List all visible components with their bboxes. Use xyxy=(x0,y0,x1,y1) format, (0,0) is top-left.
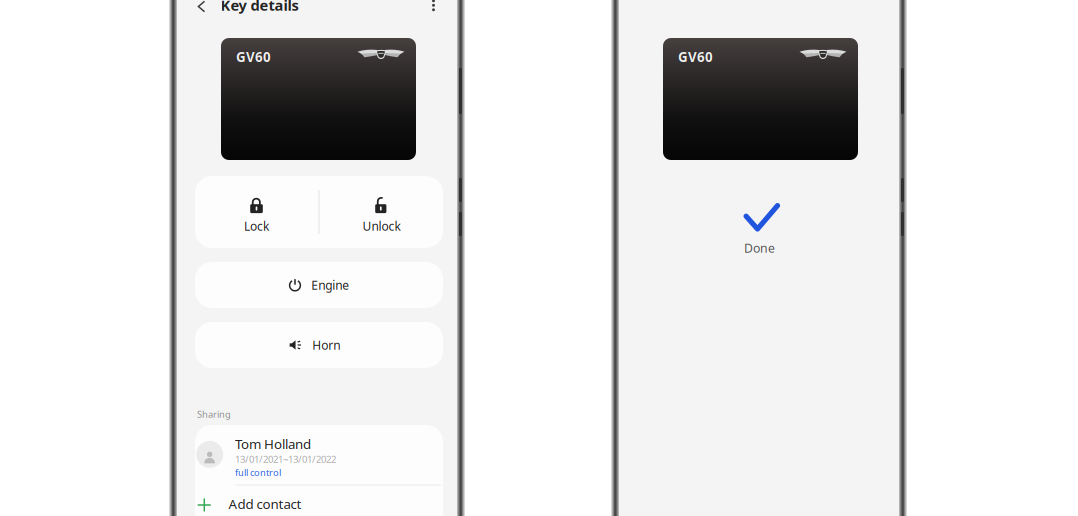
button[interactable]: More options xyxy=(421,0,445,17)
staticText: Add contact xyxy=(229,495,302,513)
staticText: Unlock xyxy=(362,218,400,234)
staticText: Horn xyxy=(312,337,340,353)
staticText: Done xyxy=(744,240,775,256)
button[interactable]: Unlock xyxy=(320,176,443,248)
staticText: Engine xyxy=(311,277,349,293)
staticText: GV60 xyxy=(236,48,271,66)
staticText: Tom Holland xyxy=(235,435,311,453)
button[interactable]: Add contact xyxy=(195,485,443,516)
button[interactable]: Engine xyxy=(195,262,443,308)
button[interactable]: Back xyxy=(187,0,215,19)
staticText: 13/01/2021~13/01/2022 xyxy=(235,452,336,465)
staticText: full control xyxy=(235,466,281,479)
button[interactable]: Lock xyxy=(195,176,318,248)
staticText: Sharing xyxy=(197,408,231,420)
button[interactable]: Key details xyxy=(220,0,298,15)
staticText: GV60 xyxy=(678,48,713,66)
button[interactable]: Tom Holland xyxy=(195,425,443,485)
staticText: Lock xyxy=(244,218,269,234)
button[interactable]: Horn xyxy=(195,322,443,368)
staticText: Key details xyxy=(220,0,298,15)
